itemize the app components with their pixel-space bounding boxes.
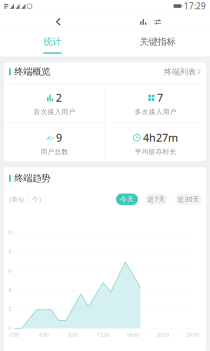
- staticText: 近7天: [147, 195, 165, 204]
- button[interactable]: 近7天: [145, 193, 167, 205]
- staticText: 终端概览: [14, 66, 50, 77]
- staticText: 平均留存时长: [135, 148, 177, 156]
- staticText: 4:00: [39, 331, 49, 338]
- staticText: 用户总数: [40, 148, 68, 156]
- button[interactable]: 关键指标: [105, 31, 210, 57]
- staticText: (单位：个): [9, 195, 41, 204]
- staticText: 关键指标: [139, 36, 175, 47]
- staticText: 10: [7, 229, 13, 236]
- button[interactable]: Filter: [154, 13, 162, 31]
- staticText: 12:00: [97, 331, 110, 338]
- staticText: 4h27m: [143, 131, 178, 145]
- staticText: 17:29: [184, 1, 206, 11]
- button[interactable]: Charts: [139, 13, 147, 31]
- staticText: 终端列表: [164, 67, 196, 77]
- button[interactable]: 今天: [116, 193, 138, 205]
- staticText: 2: [8, 305, 11, 313]
- staticText: 0: [8, 325, 11, 332]
- staticText: 首次接入用户: [33, 108, 75, 116]
- staticText: 16:00: [126, 331, 139, 338]
- staticText: 9: [56, 131, 62, 145]
- button[interactable]: 统计: [0, 31, 105, 57]
- staticText: 4: [8, 286, 11, 293]
- staticText: 8:00: [68, 331, 78, 338]
- button[interactable]: 终端列表: [164, 67, 201, 77]
- staticText: 近30天: [177, 195, 199, 204]
- staticText: 6: [8, 267, 11, 274]
- staticText: 7: [157, 91, 163, 105]
- button[interactable]: Back: [50, 13, 66, 31]
- staticText: 终端趋势: [14, 172, 50, 184]
- staticText: 2: [56, 91, 62, 105]
- staticText: 8: [8, 248, 11, 255]
- staticText: 多次接入用户: [135, 108, 177, 116]
- staticText: 今天: [120, 195, 134, 203]
- staticText: 24:00: [186, 331, 199, 338]
- button[interactable]: 近30天: [175, 193, 202, 205]
- staticText: 0:00: [9, 331, 19, 338]
- staticText: 20:00: [156, 331, 169, 338]
- staticText: 统计: [43, 36, 61, 47]
